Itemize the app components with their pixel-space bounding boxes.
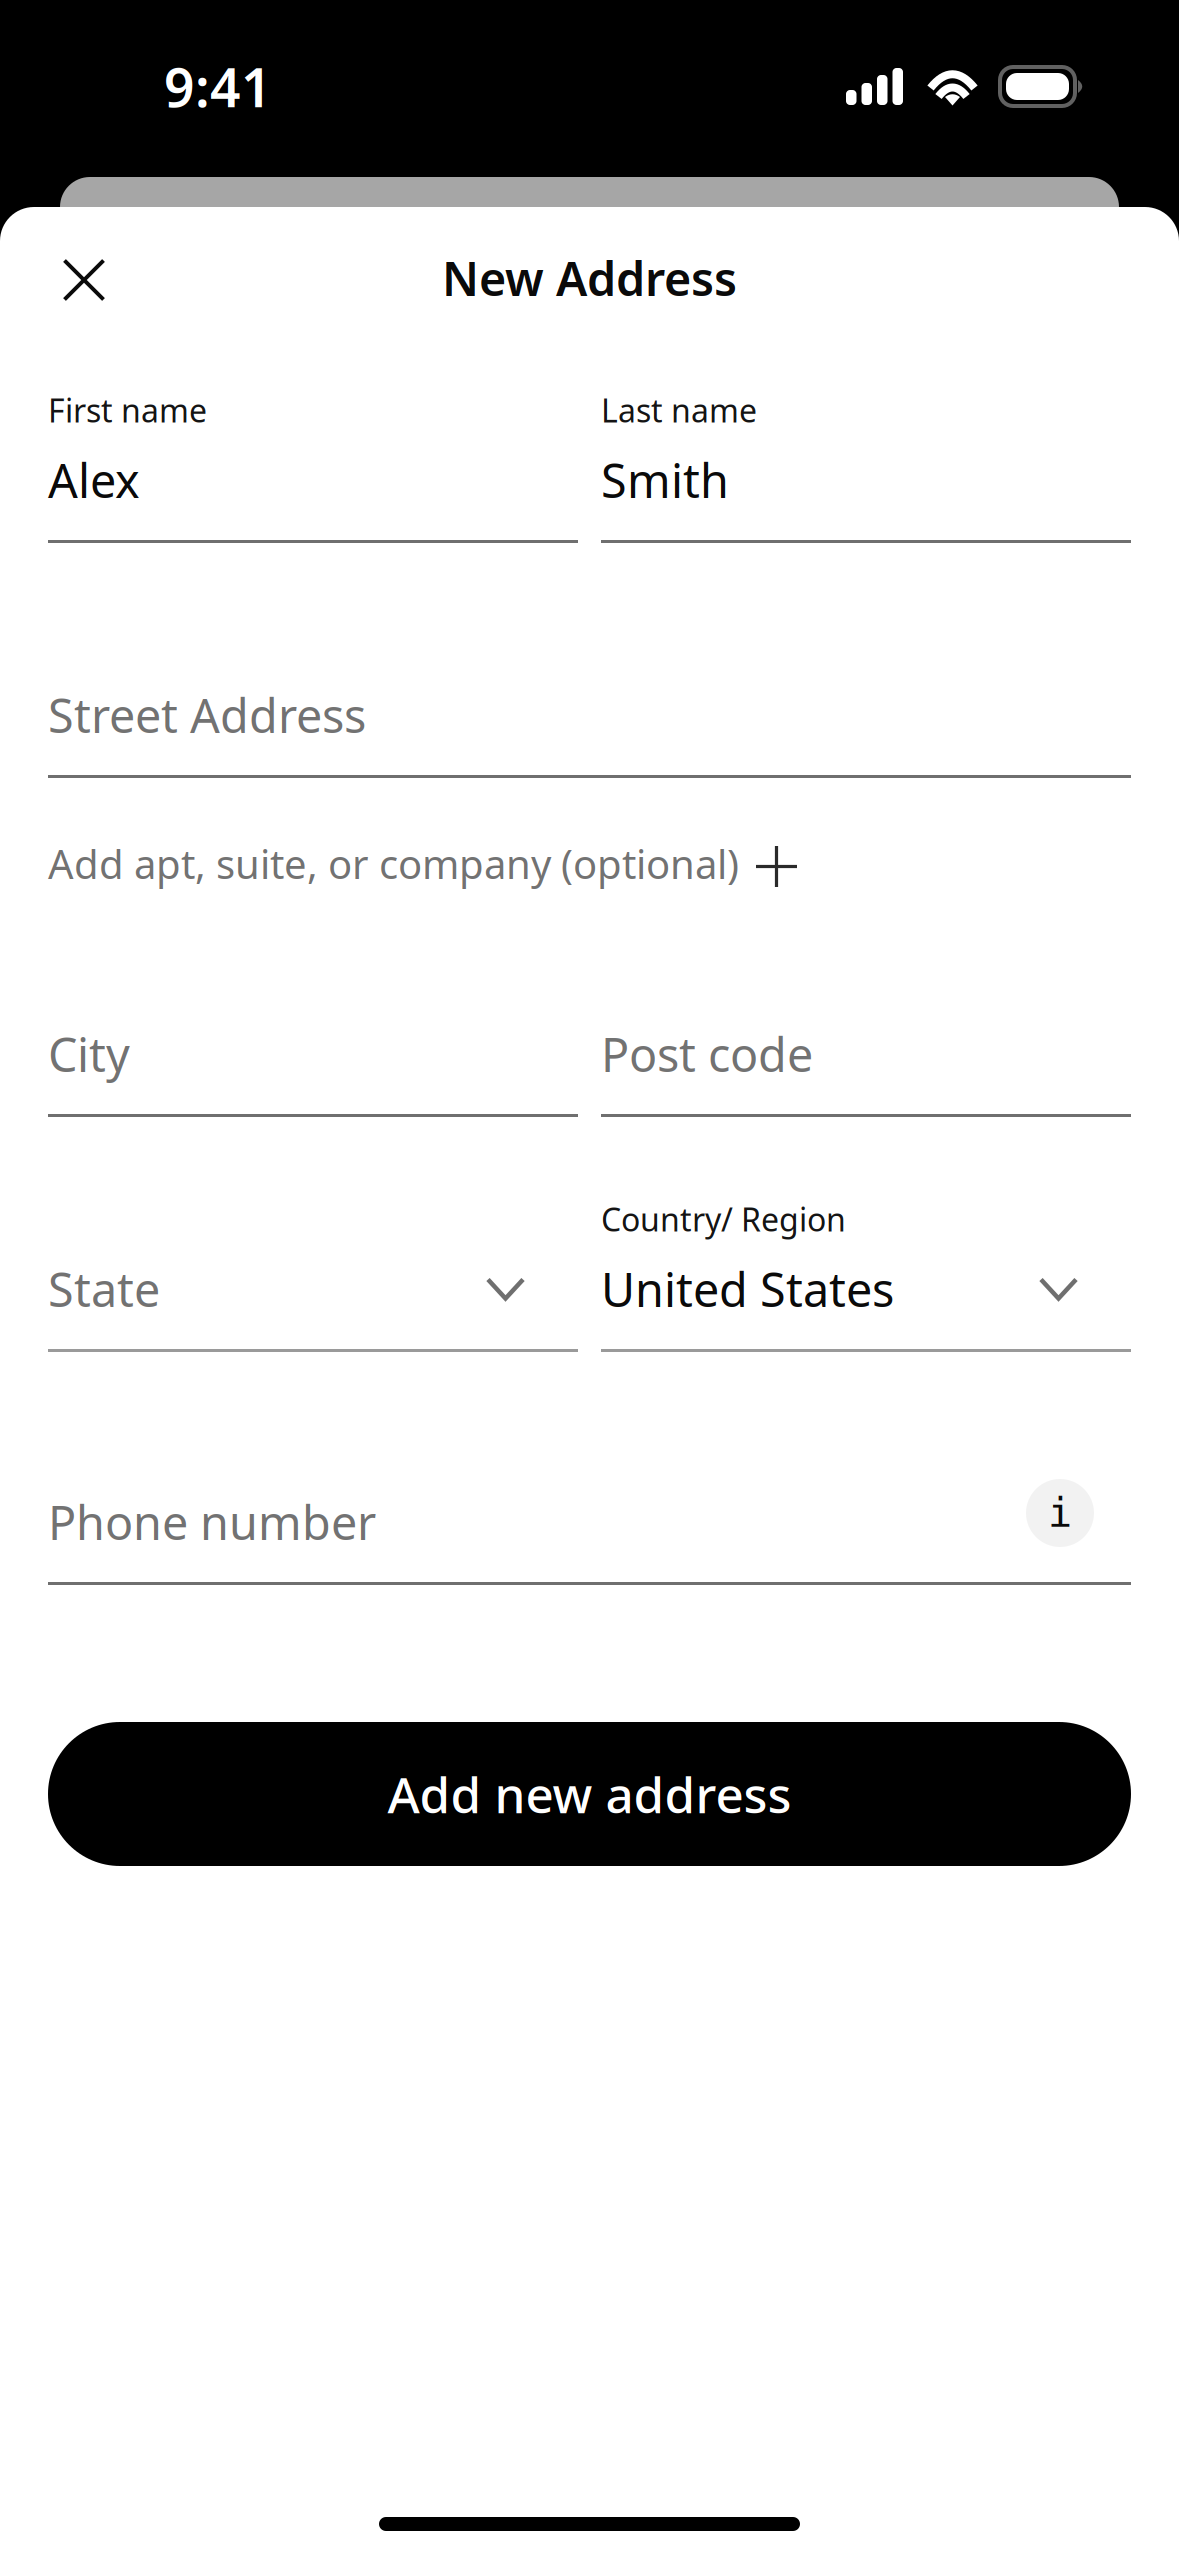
staticText: Last name <box>601 389 757 431</box>
staticText: State <box>48 1258 160 1320</box>
staticText: City <box>48 1023 130 1085</box>
button[interactable]: City <box>48 1023 578 1117</box>
staticText: Add new address <box>387 1761 791 1827</box>
staticText: Post code <box>601 1023 813 1085</box>
staticText: Add apt, suite, or company (optional) <box>48 837 739 890</box>
button[interactable]: Phone number information <box>1026 1479 1094 1547</box>
button[interactable]: Street Address <box>48 684 1131 778</box>
staticText: i <box>1048 1490 1072 1536</box>
staticText: 9:41 <box>164 51 272 122</box>
button[interactable]: First name <box>48 389 578 543</box>
button[interactable]: Close <box>42 238 126 322</box>
staticText: First name <box>48 389 207 431</box>
staticText: New Address <box>442 247 737 309</box>
staticText: Alex <box>48 449 140 511</box>
button[interactable]: Country/ Region <box>601 1198 1131 1352</box>
staticText: United States <box>601 1258 894 1320</box>
staticText: Country/ Region <box>601 1198 846 1240</box>
staticText: Phone number <box>48 1491 376 1553</box>
staticText: Smith <box>601 449 729 511</box>
button[interactable]: Add new address <box>48 1722 1131 1866</box>
button[interactable]: State <box>48 1198 578 1352</box>
button[interactable]: Post code <box>601 1023 1131 1117</box>
button[interactable]: Add apt, suite, or company (optional) <box>48 836 1131 891</box>
button[interactable]: Last name <box>601 389 1131 543</box>
staticText: Street Address <box>48 684 366 746</box>
